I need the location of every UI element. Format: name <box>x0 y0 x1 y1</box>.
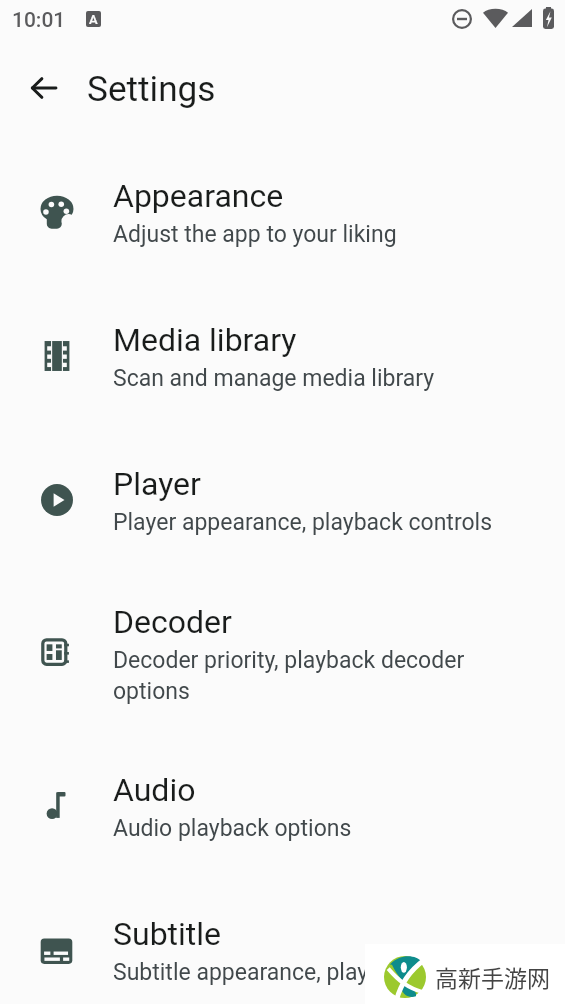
staticText: Decoder priority, playback decoder optio… <box>113 647 503 704</box>
staticText: Media library <box>113 321 297 359</box>
staticText: Appearance <box>113 177 284 215</box>
staticText: 高新手游网 <box>435 960 550 993</box>
staticText: Audio <box>113 771 196 809</box>
staticText: Settings <box>87 68 216 109</box>
button[interactable]: Player <box>0 428 565 572</box>
staticText: Player <box>113 465 201 503</box>
staticText: Audio playback options <box>113 815 352 842</box>
staticText: A <box>89 12 98 27</box>
button[interactable]: Audio <box>0 734 565 878</box>
button[interactable]: Decoder <box>0 572 565 734</box>
staticText: 10:01 <box>12 8 66 33</box>
staticText: Player appearance, playback controls <box>113 509 493 536</box>
staticText: Decoder <box>113 603 232 641</box>
button[interactable]: Subtitle <box>0 878 565 1004</box>
button[interactable]: Appearance <box>0 140 565 284</box>
staticText: Scan and manage media library <box>113 365 435 392</box>
staticText: Adjust the app to your liking <box>113 221 397 248</box>
staticText: Subtitle appearance, playback controls <box>113 959 503 986</box>
staticText: Subtitle <box>113 915 222 953</box>
button[interactable]: Media library <box>0 284 565 428</box>
button[interactable]: Back <box>20 64 68 112</box>
